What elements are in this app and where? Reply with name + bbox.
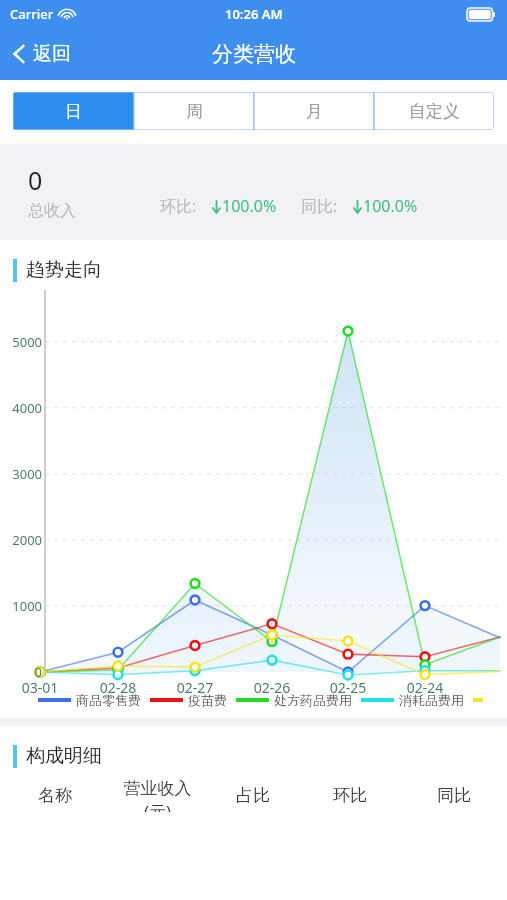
staticText: 同比 (437, 785, 471, 806)
staticText: Carrier (10, 5, 54, 23)
staticText: 疫苗费 (188, 692, 227, 708)
staticText: 0 (28, 163, 43, 197)
staticText: 环比: (160, 195, 197, 217)
staticText: 月 (306, 101, 323, 122)
button[interactable]: 返回 (0, 36, 85, 72)
staticText: 分类营收 (212, 41, 296, 67)
staticText: 0 (2, 663, 42, 681)
staticText: 5000 (2, 333, 42, 351)
staticText: 周 (186, 101, 203, 122)
staticText: 02-24 (397, 678, 453, 697)
button[interactable]: 日 (13, 92, 134, 130)
staticText: 总收入 (28, 201, 76, 221)
staticText: 03-01 (12, 678, 68, 697)
staticText: 100.0% (363, 195, 418, 217)
staticText: 返回 (33, 42, 71, 66)
staticText: 趋势走向 (26, 258, 102, 282)
staticText: 100.0% (222, 195, 277, 217)
staticText: 4000 (2, 399, 42, 417)
button[interactable]: 周 (134, 92, 254, 130)
staticText: 3000 (2, 465, 42, 483)
staticText: 日 (65, 101, 82, 122)
staticText: 02-26 (244, 678, 300, 697)
staticText: 自定义 (409, 101, 460, 122)
staticText: 处方药品费用 (274, 692, 352, 708)
staticText: 环比 (333, 785, 367, 806)
button[interactable]: 自定义 (374, 92, 494, 130)
staticText: 02-28 (90, 678, 146, 697)
staticText: 02-25 (320, 678, 376, 697)
staticText: 1000 (2, 597, 42, 615)
staticText: 构成明细 (26, 744, 102, 768)
staticText: 10:26 AM (225, 5, 283, 23)
staticText: 占比 (236, 785, 270, 806)
staticText: 2000 (2, 531, 42, 549)
button[interactable]: 月 (254, 92, 374, 130)
staticText: 营业收入(元) (110, 778, 205, 812)
staticText: 商品零售费 (76, 692, 141, 708)
staticText: 名称 (38, 785, 72, 806)
staticText: 02-27 (167, 678, 223, 697)
staticText: 消耗品费用 (399, 692, 464, 708)
staticText: 同比: (301, 195, 338, 217)
